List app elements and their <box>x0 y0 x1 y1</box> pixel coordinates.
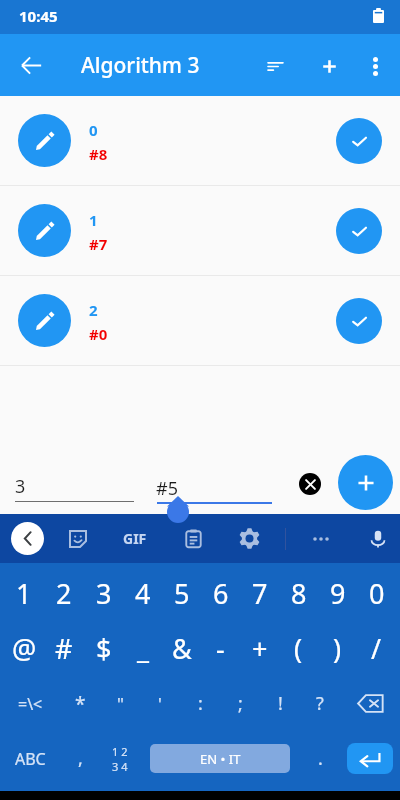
staticText: EN • IT <box>200 750 241 768</box>
button[interactable]: Edit <box>18 114 71 167</box>
staticText: 3 <box>15 474 26 499</box>
staticText: #0 <box>89 324 108 344</box>
button[interactable]: ) <box>318 621 357 676</box>
button[interactable]: Back <box>7 41 55 89</box>
staticText: / <box>371 630 382 667</box>
button[interactable]: ABC <box>0 731 60 786</box>
staticText: #5 <box>156 476 178 501</box>
staticText: $ <box>96 630 112 667</box>
button[interactable]: Add item <box>338 455 393 510</box>
button[interactable]: 2 <box>44 566 84 621</box>
button[interactable]: - <box>201 621 240 676</box>
button[interactable]: + <box>240 621 279 676</box>
button[interactable]: _ <box>123 621 162 676</box>
staticText: ? <box>316 691 324 716</box>
button[interactable]: , <box>60 731 100 786</box>
button[interactable]: =\< <box>0 676 60 731</box>
button[interactable]: Edit <box>18 204 71 257</box>
staticText: 3 <box>96 575 112 612</box>
staticText: 8 <box>291 575 307 612</box>
staticText: ( <box>294 630 303 667</box>
button[interactable]: Done <box>336 118 382 164</box>
staticText: =\< <box>18 693 43 715</box>
staticText: + <box>252 630 268 667</box>
button[interactable]: / <box>357 621 396 676</box>
staticText: 4 <box>135 575 151 612</box>
staticText: 2 <box>89 300 98 320</box>
staticText: ; <box>238 691 243 716</box>
staticText: 1 <box>16 575 32 612</box>
staticText: - <box>216 630 225 667</box>
staticText: #7 <box>89 234 108 254</box>
staticText: ) <box>333 630 342 667</box>
button[interactable]: Clear <box>299 473 321 495</box>
staticText: #8 <box>89 144 108 164</box>
button[interactable]: Edit <box>0 186 400 275</box>
button[interactable]: Done <box>336 298 382 344</box>
staticText: ! <box>278 691 283 716</box>
staticText: _ <box>137 630 149 667</box>
button[interactable]: Edit <box>0 276 400 365</box>
button[interactable]: Enter <box>347 743 393 774</box>
button[interactable]: * <box>60 676 100 731</box>
button[interactable]: @ <box>4 621 44 676</box>
staticText: 0 <box>369 575 385 612</box>
button[interactable]: $ <box>84 621 123 676</box>
staticText: & <box>172 630 192 667</box>
button[interactable]: ; <box>220 676 260 731</box>
button[interactable]: Numbers <box>100 731 140 786</box>
staticText: ' <box>158 692 162 715</box>
button[interactable]: 4 <box>123 566 162 621</box>
button[interactable]: 9 <box>318 566 357 621</box>
button[interactable]: ( <box>279 621 318 676</box>
staticText: 1 <box>89 210 98 230</box>
staticText: 6 <box>213 575 229 612</box>
button[interactable]: ? <box>300 676 340 731</box>
button[interactable]: 3 <box>84 566 123 621</box>
staticText: " <box>117 692 124 715</box>
button[interactable]: Back <box>11 522 44 555</box>
button[interactable]: " <box>100 676 140 731</box>
staticText: 10:45 <box>19 6 58 26</box>
staticText: 9 <box>330 575 346 612</box>
button[interactable]: 1 <box>4 566 44 621</box>
button[interactable]: Done <box>336 208 382 254</box>
staticText: * <box>75 691 86 717</box>
button[interactable]: 8 <box>279 566 318 621</box>
button[interactable]: Add <box>306 43 353 90</box>
button[interactable]: ! <box>260 676 300 731</box>
button[interactable]: Edit <box>18 294 71 347</box>
staticText: , <box>78 746 83 771</box>
button[interactable]: Voice input <box>361 522 394 555</box>
button[interactable]: Sort <box>252 43 299 90</box>
button[interactable]: 5 <box>162 566 201 621</box>
staticText: 3 4 <box>112 759 128 774</box>
button[interactable]: . <box>300 731 340 786</box>
staticText: ABC <box>15 748 46 770</box>
button[interactable]: Settings <box>233 522 266 555</box>
staticText: GIF <box>123 529 147 548</box>
button[interactable]: Stickers <box>61 522 94 555</box>
button[interactable]: 0 <box>357 566 396 621</box>
button[interactable]: Edit <box>0 96 400 185</box>
button[interactable]: & <box>162 621 201 676</box>
staticText: 7 <box>252 575 268 612</box>
staticText: 2 <box>56 575 72 612</box>
button[interactable]: More <box>304 522 337 555</box>
button[interactable]: : <box>180 676 220 731</box>
staticText: : <box>198 691 203 716</box>
button[interactable]: ' <box>140 676 180 731</box>
button[interactable]: EN • IT <box>150 744 290 773</box>
staticText: 5 <box>174 575 190 612</box>
button[interactable]: Clipboard <box>177 522 210 555</box>
button[interactable]: 7 <box>240 566 279 621</box>
button[interactable]: 6 <box>201 566 240 621</box>
button[interactable]: More options <box>352 43 399 90</box>
button[interactable]: # <box>44 621 84 676</box>
staticText: Algorithm 3 <box>81 51 200 80</box>
button[interactable]: Backspace <box>340 676 400 731</box>
staticText: # <box>55 630 73 667</box>
staticText: @ <box>12 630 37 667</box>
staticText: . <box>318 746 323 771</box>
button[interactable]: GIF <box>117 521 152 556</box>
